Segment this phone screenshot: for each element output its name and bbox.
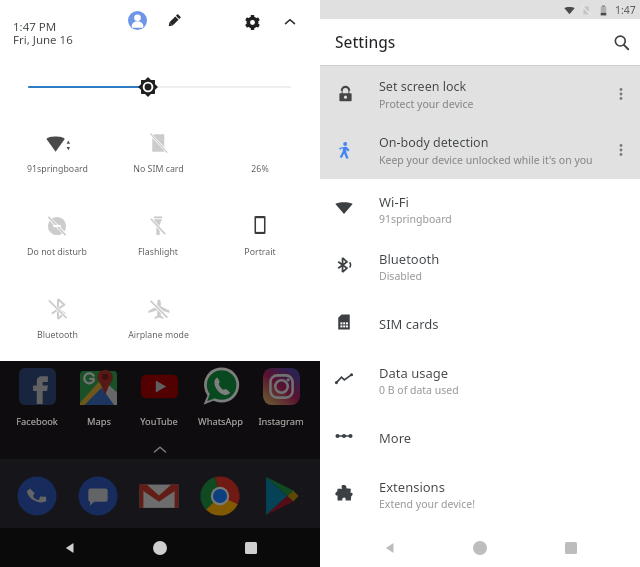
button[interactable]: Brightness [20,75,300,99]
button[interactable] [76,474,120,518]
button[interactable]: Bluetooth [9,297,105,357]
button[interactable]: Back [45,528,95,567]
button[interactable]: 91springboard [9,131,105,191]
staticText: Disabled [379,269,422,283]
staticText: YouTube [140,415,178,428]
staticText: Facebook [16,415,58,428]
staticText: Extend your device! [379,497,476,511]
button[interactable]: No SIM card [110,131,206,191]
button[interactable]: More [320,407,640,464]
button[interactable] [15,474,59,518]
staticText: On-body detection [379,134,489,151]
button[interactable]: Portrait [212,214,308,274]
staticText: Flashlight [138,246,178,258]
button[interactable]: Collapse [282,14,298,30]
button[interactable]: All apps [150,440,170,460]
staticText: SIM cards [379,315,439,333]
button[interactable]: Facebook [7,368,67,432]
button[interactable]: Settings [245,15,260,30]
button[interactable] [198,474,242,518]
button[interactable]: Flashlight [110,214,206,274]
staticText: 91springboard [27,163,88,175]
button[interactable]: Instagram [251,368,311,432]
button[interactable]: 26% [212,131,308,191]
staticText: Bluetooth [37,329,78,341]
staticText: Bluetooth [379,250,440,268]
button[interactable]: Back [365,528,415,567]
staticText: 91springboard [379,212,452,226]
staticText: Portrait [244,246,276,258]
button[interactable]: Edit [166,13,182,29]
button[interactable]: Extensions [320,464,640,521]
button[interactable]: Set screen lock [320,66,640,122]
button[interactable]: Wi-Fi [320,179,640,236]
staticText: 1:47 [615,3,636,17]
staticText: Instagram [258,415,304,428]
staticText: Protect your device [379,97,474,111]
staticText: Maps [87,415,111,428]
staticText: Settings [335,31,396,52]
button[interactable]: Recents [226,528,276,567]
button[interactable]: Home [455,528,505,567]
button[interactable]: User profile [128,11,147,30]
button[interactable]: Recents [546,528,596,567]
button[interactable]: More options [609,138,633,162]
button[interactable]: Airplane mode [110,297,206,357]
button[interactable]: YouTube [129,368,189,432]
button[interactable]: Maps [68,368,128,432]
button[interactable]: WhatsApp [190,368,250,432]
staticText: Airplane mode [128,329,189,341]
staticText: Extensions [379,478,445,496]
staticText: Wi-Fi [379,193,409,211]
staticText: Set screen lock [379,78,467,95]
button[interactable] [259,474,303,518]
staticText: Keep your device unlocked while it's on … [379,153,593,167]
button[interactable]: Data usage [320,350,640,407]
button[interactable]: Search [611,32,631,52]
button[interactable]: On-body detection [320,122,640,178]
staticText: No SIM card [133,163,184,175]
staticText: 26% [251,163,269,175]
staticText: WhatsApp [198,415,243,428]
staticText: Do not disturb [27,246,87,258]
staticText: More [379,429,412,447]
button[interactable]: Do not disturb [9,214,105,274]
staticText: Data usage [379,364,449,382]
staticText: 0 B of data used [379,383,459,397]
button[interactable]: Home [135,528,185,567]
staticText: Fri, June 16 [13,32,73,48]
button[interactable]: More options [609,82,633,106]
staticText: 1:47 PM [13,19,57,35]
button[interactable]: Bluetooth [320,236,640,293]
button[interactable]: SIM cards [320,293,640,350]
button[interactable] [137,474,181,518]
